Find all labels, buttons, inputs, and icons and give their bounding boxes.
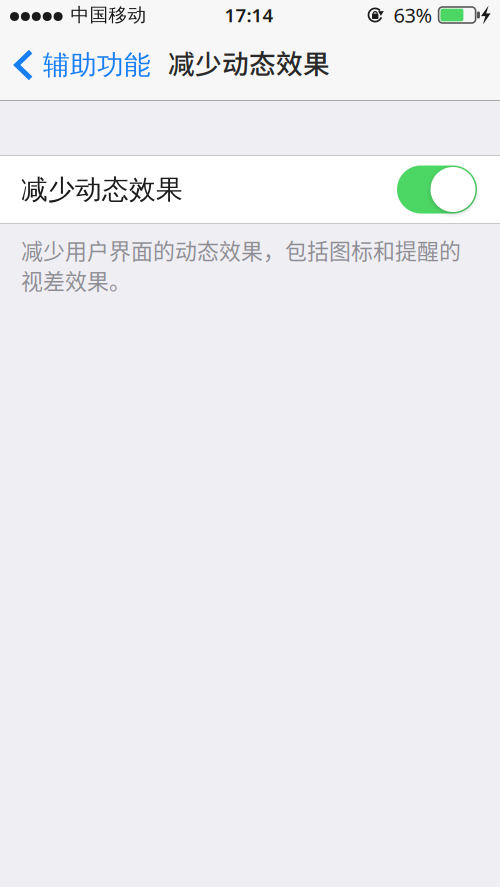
- button[interactable]: 减少动态效果: [397, 165, 477, 213]
- staticText: 减少动态效果: [168, 43, 330, 81]
- staticText: 中国移动: [71, 3, 147, 26]
- staticText: 减少动态效果: [21, 173, 183, 206]
- button[interactable]: 辅助功能: [0, 30, 161, 100]
- staticText: 17:14: [224, 3, 273, 27]
- staticText: 63%: [394, 2, 433, 28]
- staticText: 减少用户界面的动态效果，包括图标和提醒的视差效果。: [21, 234, 461, 296]
- staticText: 辅助功能: [43, 49, 151, 81]
